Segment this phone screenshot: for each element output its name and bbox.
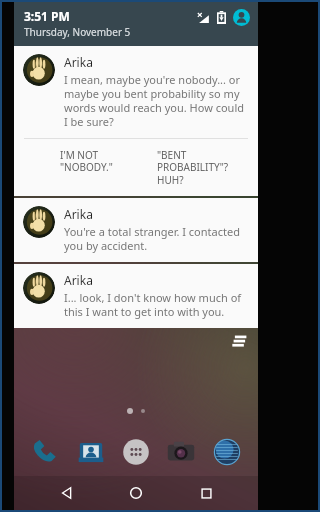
button[interactable]: Apps [116, 432, 156, 472]
button[interactable]: Home [119, 476, 153, 510]
staticText: I'M NOT "NOBODY." [60, 148, 149, 174]
staticText: "BENT PROBABILITY"? HUH? [157, 148, 246, 187]
button[interactable]: Clear all notifications [232, 333, 248, 349]
staticText: I... look, I don't know how much of this… [64, 290, 248, 319]
button[interactable]: Arika avatar [14, 264, 258, 328]
button[interactable]: Browser [207, 432, 247, 472]
staticText: Thursday, November 5 [24, 25, 131, 39]
button[interactable]: I'M NOT "NOBODY." [56, 139, 153, 183]
button[interactable]: Phone [25, 432, 65, 472]
staticText: Arika [64, 272, 93, 288]
button[interactable]: Recent apps [189, 476, 223, 510]
button[interactable]: Arika avatar [14, 46, 258, 196]
button[interactable]: "BENT PROBABILITY"? HUH? [153, 139, 250, 196]
button[interactable]: Camera [161, 432, 201, 472]
staticText: You're a total stranger. I contacted you… [64, 224, 248, 253]
other: Arika avatar [23, 54, 55, 86]
other: Arika avatar [23, 206, 55, 238]
other: Arika avatar [23, 272, 55, 304]
button[interactable]: Back [50, 476, 84, 510]
button[interactable]: Arika avatar [14, 198, 258, 262]
staticText: Arika [64, 206, 93, 222]
other: Signal 3G [197, 11, 211, 25]
button[interactable]: User profile [233, 9, 250, 26]
staticText: 3:51 PM [24, 8, 70, 24]
staticText: Arika [64, 54, 93, 70]
button[interactable]: Contacts [71, 432, 111, 472]
other: Battery [217, 11, 226, 24]
staticText: I mean, maybe you're nobody... or maybe … [64, 72, 248, 129]
